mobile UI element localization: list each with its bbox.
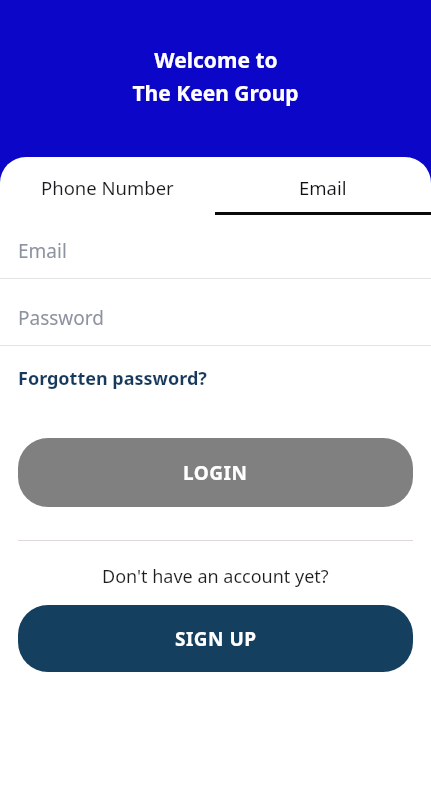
- staticText: SIGN UP: [175, 626, 257, 652]
- staticText: Forgotten password?: [18, 366, 207, 391]
- staticText: The Keen Group: [132, 79, 299, 108]
- button[interactable]: Phone Number: [0, 157, 215, 212]
- button[interactable]: LOGIN: [18, 438, 413, 507]
- button[interactable]: Email: [0, 215, 431, 278]
- staticText: Email: [299, 175, 347, 200]
- staticText: Email: [18, 238, 67, 264]
- staticText: Password: [18, 305, 104, 331]
- button[interactable]: SIGN UP: [18, 605, 413, 672]
- staticText: LOGIN: [183, 460, 248, 486]
- staticText: Phone Number: [41, 175, 174, 200]
- button[interactable]: Password: [0, 279, 431, 345]
- staticText: Don't have an account yet?: [102, 564, 329, 589]
- button[interactable]: Forgotten password?: [0, 346, 431, 410]
- button[interactable]: Email: [215, 157, 431, 212]
- staticText: Welcome to: [154, 46, 278, 75]
